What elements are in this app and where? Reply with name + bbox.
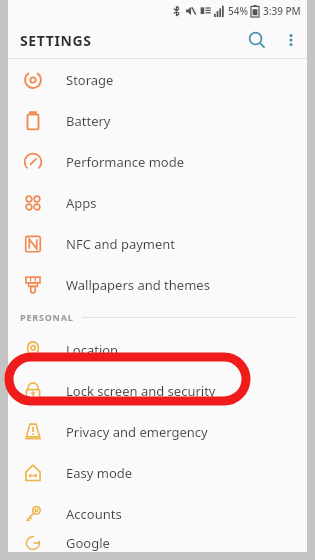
button[interactable]: More options [275,24,307,56]
staticText: NFC and payment [66,235,176,253]
staticText: 54% [228,4,248,18]
button[interactable]: Storage [8,59,307,100]
staticText: Storage [66,71,114,89]
button[interactable]: Google [8,534,307,552]
button[interactable]: Easy mode [8,452,307,493]
button[interactable]: Lock screen and security [8,370,307,411]
staticText: Privacy and emergency [66,423,208,441]
staticText: Wallpapers and themes [66,276,210,294]
staticText: Lock screen and security [66,382,216,400]
staticText: Battery [66,112,111,130]
button[interactable]: Accounts [8,493,307,534]
button[interactable]: Location [8,329,307,370]
staticText: Apps [66,194,97,212]
button[interactable]: Search [239,22,275,58]
staticText: Google [66,534,110,552]
button[interactable]: NFC and payment [8,223,307,264]
staticText: SETTINGS [20,31,92,50]
staticText: 3:39 PM [263,4,301,18]
button[interactable]: Battery [8,100,307,141]
button[interactable]: Apps [8,182,307,223]
button[interactable]: Wallpapers and themes [8,264,307,305]
staticText: PERSONAL [20,311,74,323]
button[interactable]: Performance mode [8,141,307,182]
staticText: Performance mode [66,153,185,171]
staticText: Accounts [66,505,122,523]
button[interactable]: Privacy and emergency [8,411,307,452]
staticText: Location [66,341,119,359]
staticText: Easy mode [66,464,133,482]
